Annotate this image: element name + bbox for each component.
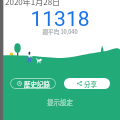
staticText: 歷史記錄 <box>24 79 50 88</box>
button[interactable]: 歷史記錄 <box>10 78 56 89</box>
button[interactable]: 提示設定 <box>47 97 73 106</box>
button[interactable]: 分享 <box>64 78 110 89</box>
staticText: 11318 <box>0 7 120 32</box>
staticText: 分享 <box>84 79 97 88</box>
staticText: 2020年1月28日 <box>5 0 61 8</box>
staticText: 週平均 10,040 <box>0 28 120 36</box>
